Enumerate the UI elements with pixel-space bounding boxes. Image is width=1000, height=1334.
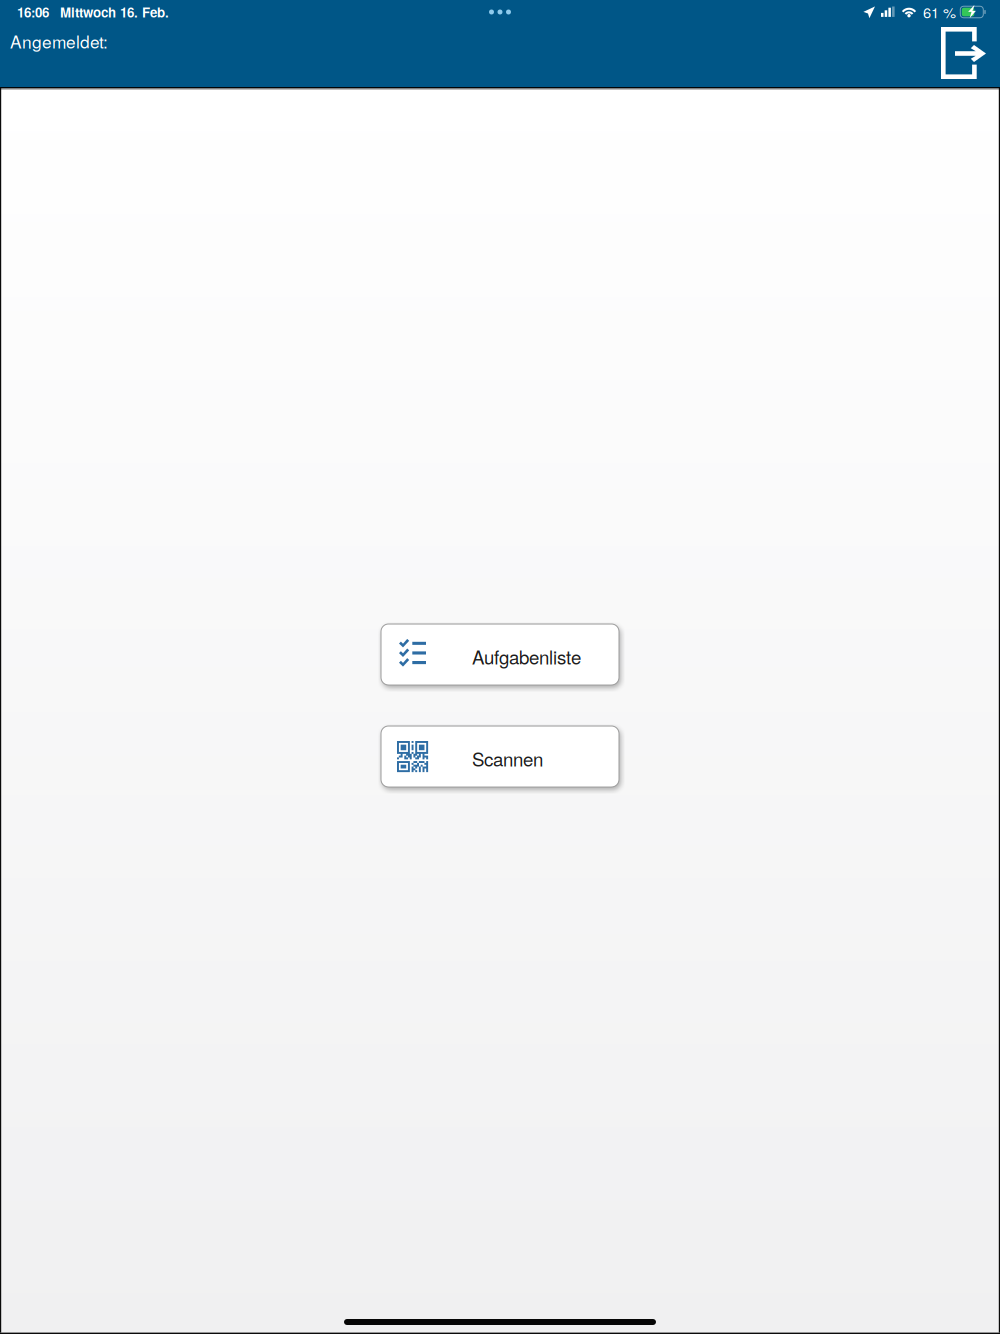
staticText: Scannen — [472, 745, 543, 772]
staticText: Mittwoch 16. Feb. — [60, 2, 169, 22]
button[interactable]: Aufgabenliste — [381, 624, 619, 685]
staticText: 61 % — [923, 1, 956, 22]
staticText: Aufgabenliste — [472, 643, 581, 670]
staticText: Angemeldet: — [10, 28, 108, 53]
button[interactable]: Abmelden — [927, 25, 1000, 87]
staticText: 16:06 — [17, 2, 49, 22]
button[interactable]: Scannen — [381, 726, 619, 787]
